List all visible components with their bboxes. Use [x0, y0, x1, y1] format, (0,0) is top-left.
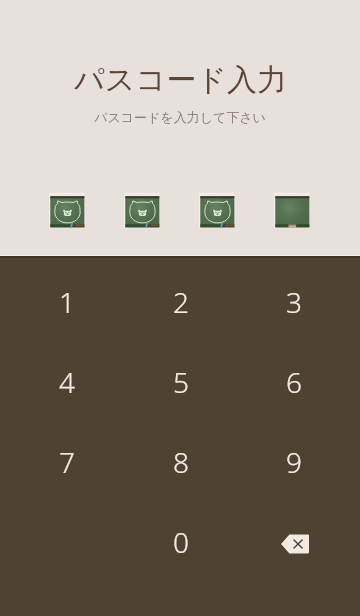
- staticText: 5: [173, 363, 189, 401]
- button[interactable]: 1: [10, 262, 124, 342]
- staticText: 4: [59, 363, 75, 401]
- staticText: パスコード入力: [74, 61, 287, 99]
- button[interactable]: 5: [124, 342, 237, 422]
- staticText: 0: [173, 523, 189, 561]
- staticText: 3: [286, 283, 302, 321]
- button[interactable]: Backspace: [237, 502, 350, 582]
- button[interactable]: 9: [237, 422, 350, 502]
- button[interactable]: 6: [237, 342, 350, 422]
- other: Backspace: [281, 534, 309, 554]
- button[interactable]: 7: [10, 422, 124, 502]
- button[interactable]: 3: [237, 262, 350, 342]
- staticText: 8: [173, 443, 189, 481]
- button[interactable]: 8: [124, 422, 237, 502]
- button[interactable]: 4: [10, 342, 124, 422]
- staticText: パスコードを入力して下さい: [94, 109, 266, 125]
- staticText: 2: [173, 283, 189, 321]
- staticText: 7: [59, 443, 75, 481]
- staticText: 1: [59, 283, 75, 321]
- staticText: 6: [286, 363, 302, 401]
- button[interactable]: 2: [124, 262, 237, 342]
- button[interactable]: 0: [124, 502, 237, 582]
- staticText: 9: [286, 443, 302, 481]
